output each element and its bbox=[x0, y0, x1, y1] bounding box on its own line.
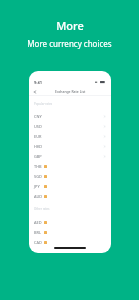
staticText: AED bbox=[34, 220, 42, 225]
staticText: EUR bbox=[34, 134, 42, 139]
button[interactable]: AED bbox=[29, 217, 111, 227]
staticText: More currency choices bbox=[27, 38, 112, 49]
staticText: GBP bbox=[34, 154, 42, 159]
button[interactable]: CAD bbox=[29, 237, 111, 247]
button[interactable]: AUD bbox=[29, 191, 111, 201]
staticText: Other rates bbox=[34, 207, 50, 211]
button[interactable]: EUR bbox=[29, 131, 111, 141]
button[interactable]: THB bbox=[29, 161, 111, 171]
staticText: USD bbox=[34, 124, 42, 129]
button[interactable]: JPY bbox=[29, 181, 111, 191]
staticText: Exchange Rate List bbox=[55, 89, 86, 94]
button[interactable]: USD bbox=[29, 121, 111, 131]
staticText: SGD bbox=[34, 174, 42, 179]
staticText: THB bbox=[34, 164, 42, 169]
staticText: BRL bbox=[34, 230, 41, 235]
button[interactable]: BRL bbox=[29, 227, 111, 237]
button[interactable]: HKD bbox=[29, 141, 111, 151]
staticText: CAD bbox=[34, 240, 42, 245]
button[interactable]: CNY bbox=[29, 111, 111, 121]
staticText: JPY bbox=[34, 184, 40, 189]
staticText: 9:41 bbox=[34, 80, 42, 85]
staticText: Popular rates bbox=[34, 102, 53, 106]
button[interactable]: GBP bbox=[29, 151, 111, 161]
staticText: HKD bbox=[34, 144, 43, 149]
staticText: More bbox=[56, 18, 84, 33]
button[interactable]: Back bbox=[31, 88, 38, 95]
button[interactable]: SGD bbox=[29, 171, 111, 181]
staticText: AUD bbox=[34, 194, 43, 199]
staticText: CNY bbox=[34, 114, 42, 119]
